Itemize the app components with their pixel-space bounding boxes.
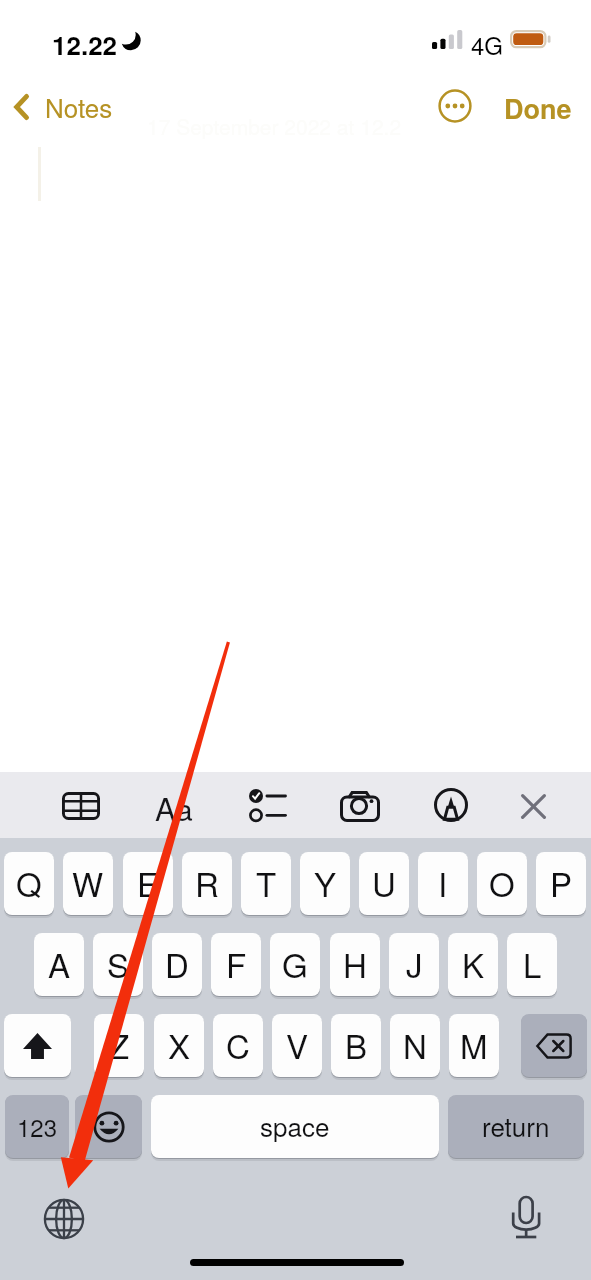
button[interactable]: Format (143, 776, 205, 838)
staticText: X (168, 1021, 191, 1068)
button[interactable]: J (389, 933, 439, 996)
staticText: H (343, 940, 367, 987)
staticText: Z (109, 1021, 130, 1068)
staticText: return (482, 1107, 550, 1144)
staticText: E (137, 859, 160, 906)
staticText: S (107, 940, 130, 987)
staticText: L (523, 940, 542, 987)
button[interactable]: Camera (329, 775, 391, 837)
button[interactable]: Z (94, 1014, 144, 1077)
button[interactable]: A (34, 933, 84, 996)
button[interactable] (521, 1014, 587, 1077)
button[interactable]: return (448, 1095, 584, 1158)
button[interactable]: C (213, 1014, 263, 1077)
staticText: 4G (471, 27, 504, 61)
staticText: O (489, 859, 515, 906)
button[interactable] (75, 1095, 142, 1158)
button[interactable]: Close keyboard (502, 775, 564, 837)
staticText: Q (16, 859, 42, 906)
button[interactable]: O (477, 852, 527, 915)
staticText: 12.22 (52, 26, 118, 63)
staticText: V (286, 1021, 309, 1068)
staticText: D (165, 940, 189, 987)
button[interactable]: T (241, 852, 291, 915)
button[interactable]: Y (300, 852, 350, 915)
button[interactable]: K (448, 933, 498, 996)
button[interactable]: More (433, 84, 477, 128)
staticText: 123 (17, 1109, 58, 1143)
staticText: P (550, 859, 573, 906)
staticText: K (462, 940, 485, 987)
button[interactable]: L (507, 933, 557, 996)
button[interactable]: X (154, 1014, 204, 1077)
button[interactable]: 123 (5, 1095, 69, 1158)
staticText: R (195, 859, 219, 906)
staticText: space (260, 1107, 330, 1144)
button[interactable]: M (449, 1014, 499, 1077)
button[interactable]: S (93, 933, 143, 996)
staticText: C (226, 1021, 250, 1068)
button[interactable]: W (63, 852, 113, 915)
button[interactable]: space (151, 1095, 439, 1158)
button[interactable]: F (211, 933, 261, 996)
button[interactable]: Markup (420, 774, 482, 836)
staticText: Aa (155, 785, 193, 829)
staticText: W (72, 859, 104, 906)
staticText: I (438, 859, 448, 906)
button[interactable]: Table (50, 775, 112, 837)
staticText: Y (314, 859, 337, 906)
button[interactable]: G (270, 933, 320, 996)
button[interactable]: I (418, 852, 468, 915)
staticText: A (48, 940, 71, 987)
staticText: U (372, 859, 396, 906)
staticText: N (403, 1021, 427, 1068)
button[interactable]: D (152, 933, 202, 996)
button[interactable]: B (331, 1014, 381, 1077)
button[interactable]: Q (4, 852, 54, 915)
staticText: T (256, 859, 277, 906)
button[interactable]: H (330, 933, 380, 996)
staticText: F (226, 940, 247, 987)
staticText: J (406, 940, 423, 987)
staticText: M (460, 1021, 488, 1068)
button[interactable]: R (182, 852, 232, 915)
staticText: Notes (45, 88, 113, 125)
button[interactable]: E (123, 852, 173, 915)
button[interactable]: P (536, 852, 586, 915)
staticText: Done (504, 89, 572, 128)
staticText: G (282, 940, 308, 987)
button[interactable]: U (359, 852, 409, 915)
button[interactable] (4, 1014, 71, 1077)
button[interactable]: Change keyboard (41, 1196, 87, 1242)
button[interactable]: Dictate (504, 1194, 550, 1240)
button[interactable]: Notes (8, 86, 123, 133)
button[interactable]: Checklist (236, 775, 298, 837)
button[interactable]: V (272, 1014, 322, 1077)
button[interactable]: N (390, 1014, 440, 1077)
button[interactable]: Done (498, 82, 578, 135)
staticText: B (345, 1021, 368, 1068)
